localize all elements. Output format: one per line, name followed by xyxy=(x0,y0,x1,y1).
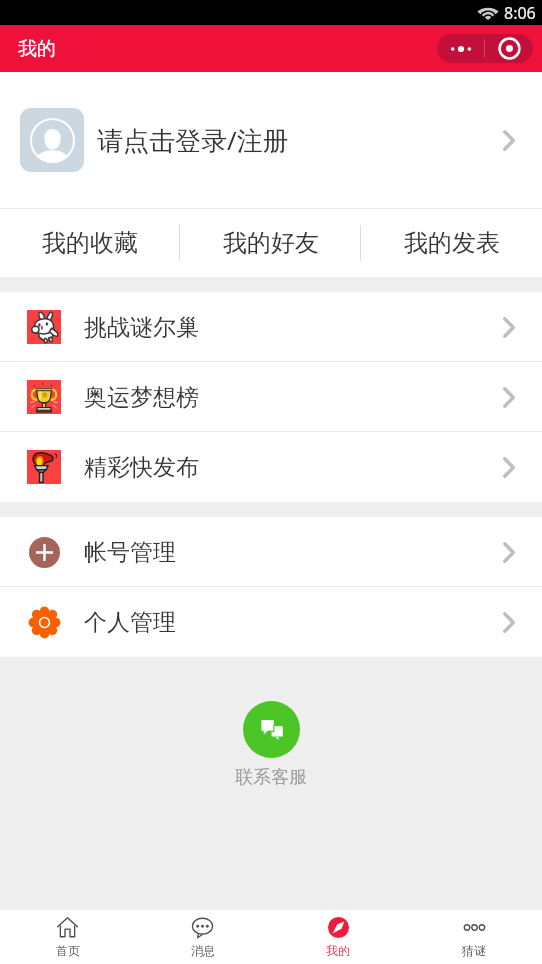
button[interactable]: 我的发表 xyxy=(361,209,542,277)
button[interactable]: 我的 xyxy=(270,910,406,964)
staticText: 个人管理 xyxy=(84,608,176,637)
button[interactable]: 我的好友 xyxy=(180,209,361,277)
other: Close mini program xyxy=(485,34,533,63)
button[interactable]: 猜谜 xyxy=(406,910,542,964)
button[interactable]: 奥运梦想榜 xyxy=(0,362,542,432)
staticText: 我的发表 xyxy=(404,228,500,258)
staticText: 请点击登录/注册 xyxy=(97,122,289,158)
staticText: 我的收藏 xyxy=(42,228,138,258)
staticText: 我的 xyxy=(18,37,56,61)
staticText: 消息 xyxy=(191,943,215,958)
button[interactable]: 首页 xyxy=(0,910,135,964)
staticText: 猜谜 xyxy=(462,943,486,958)
button[interactable]: More options xyxy=(437,34,533,63)
button[interactable]: 我的收藏 xyxy=(0,209,180,277)
staticText: 精彩快发布 xyxy=(84,453,199,482)
staticText: 8:06 xyxy=(504,2,536,24)
button[interactable]: Contact customer service xyxy=(243,701,300,758)
staticText: 我的 xyxy=(326,943,350,958)
staticText: 联系客服 xyxy=(235,766,307,789)
button[interactable]: 请点击登录/注册 xyxy=(0,72,542,208)
staticText: 首页 xyxy=(56,943,80,958)
staticText: 奥运梦想榜 xyxy=(84,383,199,412)
button[interactable]: 帐号管理 xyxy=(0,517,542,587)
staticText: 帐号管理 xyxy=(84,538,176,567)
button[interactable]: 消息 xyxy=(135,910,270,964)
button[interactable]: 精彩快发布 xyxy=(0,432,542,502)
staticText: 挑战谜尔巢 xyxy=(84,313,199,342)
button[interactable]: 挑战谜尔巢 xyxy=(0,292,542,362)
button[interactable]: 个人管理 xyxy=(0,587,542,657)
staticText: 我的好友 xyxy=(223,228,319,258)
other: More options xyxy=(437,34,484,63)
